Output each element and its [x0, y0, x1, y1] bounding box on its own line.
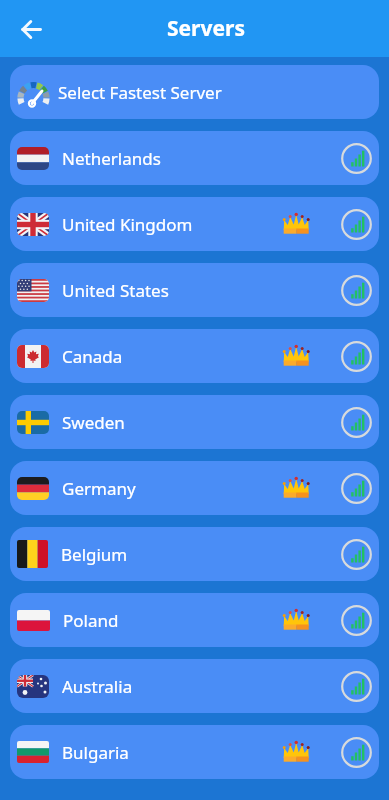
- staticText: Sweden: [62, 411, 125, 434]
- staticText: Bulgaria: [62, 741, 129, 764]
- staticText: Germany: [62, 477, 136, 500]
- button[interactable]: [10, 8, 52, 50]
- button[interactable]: United Kingdom: [10, 197, 379, 251]
- button[interactable]: Sweden: [10, 395, 379, 449]
- button[interactable]: Australia: [10, 659, 379, 713]
- staticText: Canada: [62, 345, 123, 368]
- button[interactable]: Germany: [10, 461, 379, 515]
- button[interactable]: Canada: [10, 329, 379, 383]
- staticText: Servers: [167, 14, 245, 43]
- staticText: Australia: [62, 675, 133, 698]
- staticText: Belgium: [61, 543, 128, 566]
- staticText: Netherlands: [62, 147, 161, 170]
- button[interactable]: Poland: [10, 593, 379, 647]
- staticText: United Kingdom: [62, 213, 193, 236]
- staticText: Select Fastest Server: [58, 81, 222, 104]
- staticText: Poland: [63, 609, 119, 632]
- staticText: United States: [62, 279, 169, 302]
- button[interactable]: Belgium: [10, 527, 379, 581]
- button[interactable]: Bulgaria: [10, 725, 379, 779]
- button[interactable]: Netherlands: [10, 131, 379, 185]
- button[interactable]: United States: [10, 263, 379, 317]
- button[interactable]: Select Fastest Server: [10, 65, 379, 119]
